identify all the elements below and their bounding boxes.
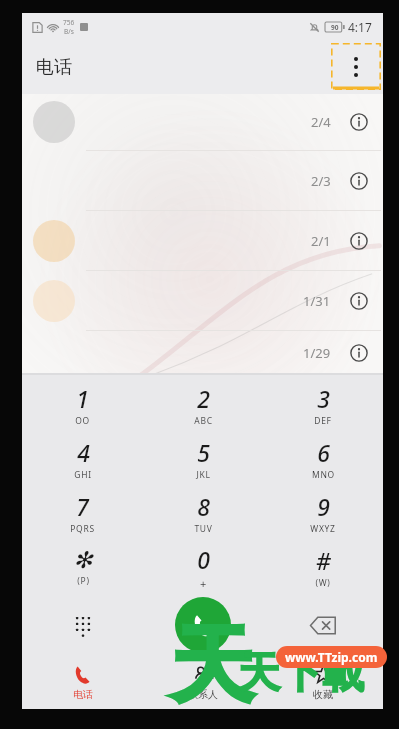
- staticText: 7: [76, 491, 89, 522]
- button[interactable]: 通话详情: [342, 164, 376, 198]
- staticText: 0: [197, 544, 210, 575]
- button[interactable]: 隐藏拨号盘: [61, 603, 105, 647]
- button[interactable]: 电话: [22, 655, 143, 709]
- staticText: GHI: [74, 469, 92, 481]
- staticText: 收藏: [313, 688, 333, 701]
- staticText: 1/29: [303, 344, 331, 362]
- button[interactable]: 收藏: [263, 655, 383, 709]
- staticText: OO: [75, 415, 90, 427]
- staticText: +: [200, 576, 207, 591]
- button[interactable]: #: [263, 540, 383, 594]
- staticText: 2: [197, 383, 210, 414]
- staticText: DEF: [314, 415, 332, 427]
- button[interactable]: 通话详情: [342, 336, 376, 370]
- staticText: 5: [197, 437, 210, 468]
- staticText: WXYZ: [310, 523, 336, 535]
- staticText: 2/3: [311, 172, 331, 190]
- staticText: 90: [331, 23, 339, 32]
- staticText: ABC: [194, 415, 213, 427]
- staticText: 4: [77, 437, 90, 468]
- staticText: 8: [197, 491, 210, 522]
- staticText: 756: [63, 18, 75, 27]
- button[interactable]: 2/3: [22, 151, 383, 210]
- button[interactable]: 9: [263, 486, 383, 540]
- button[interactable]: 1/29: [22, 331, 383, 375]
- staticText: 天下載: [238, 647, 364, 700]
- staticText: 6: [317, 437, 330, 468]
- button[interactable]: 2/4: [22, 94, 383, 150]
- staticText: JKL: [196, 469, 211, 481]
- staticText: (P): [77, 575, 90, 587]
- button[interactable]: 通话详情: [342, 224, 376, 258]
- staticText: 电话: [73, 688, 93, 701]
- button[interactable]: 更多选项: [331, 43, 381, 90]
- staticText: 3: [317, 383, 330, 414]
- staticText: 天: [170, 613, 254, 719]
- button[interactable]: 删除: [300, 602, 346, 648]
- staticText: #: [316, 545, 331, 576]
- button[interactable]: 8: [143, 486, 263, 540]
- staticText: ✻: [73, 547, 93, 574]
- staticText: 2/1: [311, 232, 331, 250]
- button[interactable]: 6: [263, 432, 383, 486]
- button[interactable]: 通话详情: [342, 105, 376, 139]
- staticText: 联系人: [188, 688, 218, 701]
- button[interactable]: 3: [263, 378, 383, 432]
- staticText: TUV: [194, 523, 213, 535]
- staticText: 4:17: [348, 19, 372, 35]
- staticText: B/s: [64, 27, 74, 36]
- button[interactable]: 7: [22, 486, 143, 540]
- button[interactable]: 拨号: [175, 597, 231, 653]
- button[interactable]: 1: [22, 378, 143, 432]
- staticText: (W): [315, 577, 331, 589]
- staticText: www.TTzip.com: [285, 649, 378, 665]
- button[interactable]: 2: [143, 378, 263, 432]
- button[interactable]: 联系人: [143, 655, 263, 709]
- button[interactable]: 0: [143, 540, 263, 594]
- staticText: 9: [317, 491, 330, 522]
- button[interactable]: 通话详情: [342, 284, 376, 318]
- button[interactable]: 1/31: [22, 271, 383, 330]
- button[interactable]: 5: [143, 432, 263, 486]
- button[interactable]: 2/1: [22, 211, 383, 270]
- button[interactable]: 4: [22, 432, 143, 486]
- staticText: 1: [76, 383, 89, 414]
- staticText: PQRS: [70, 523, 95, 535]
- button[interactable]: ✻: [22, 540, 143, 594]
- staticText: MNO: [312, 469, 335, 481]
- staticText: 2/4: [311, 113, 331, 131]
- staticText: 电话: [36, 56, 72, 79]
- staticText: 1/31: [303, 292, 331, 310]
